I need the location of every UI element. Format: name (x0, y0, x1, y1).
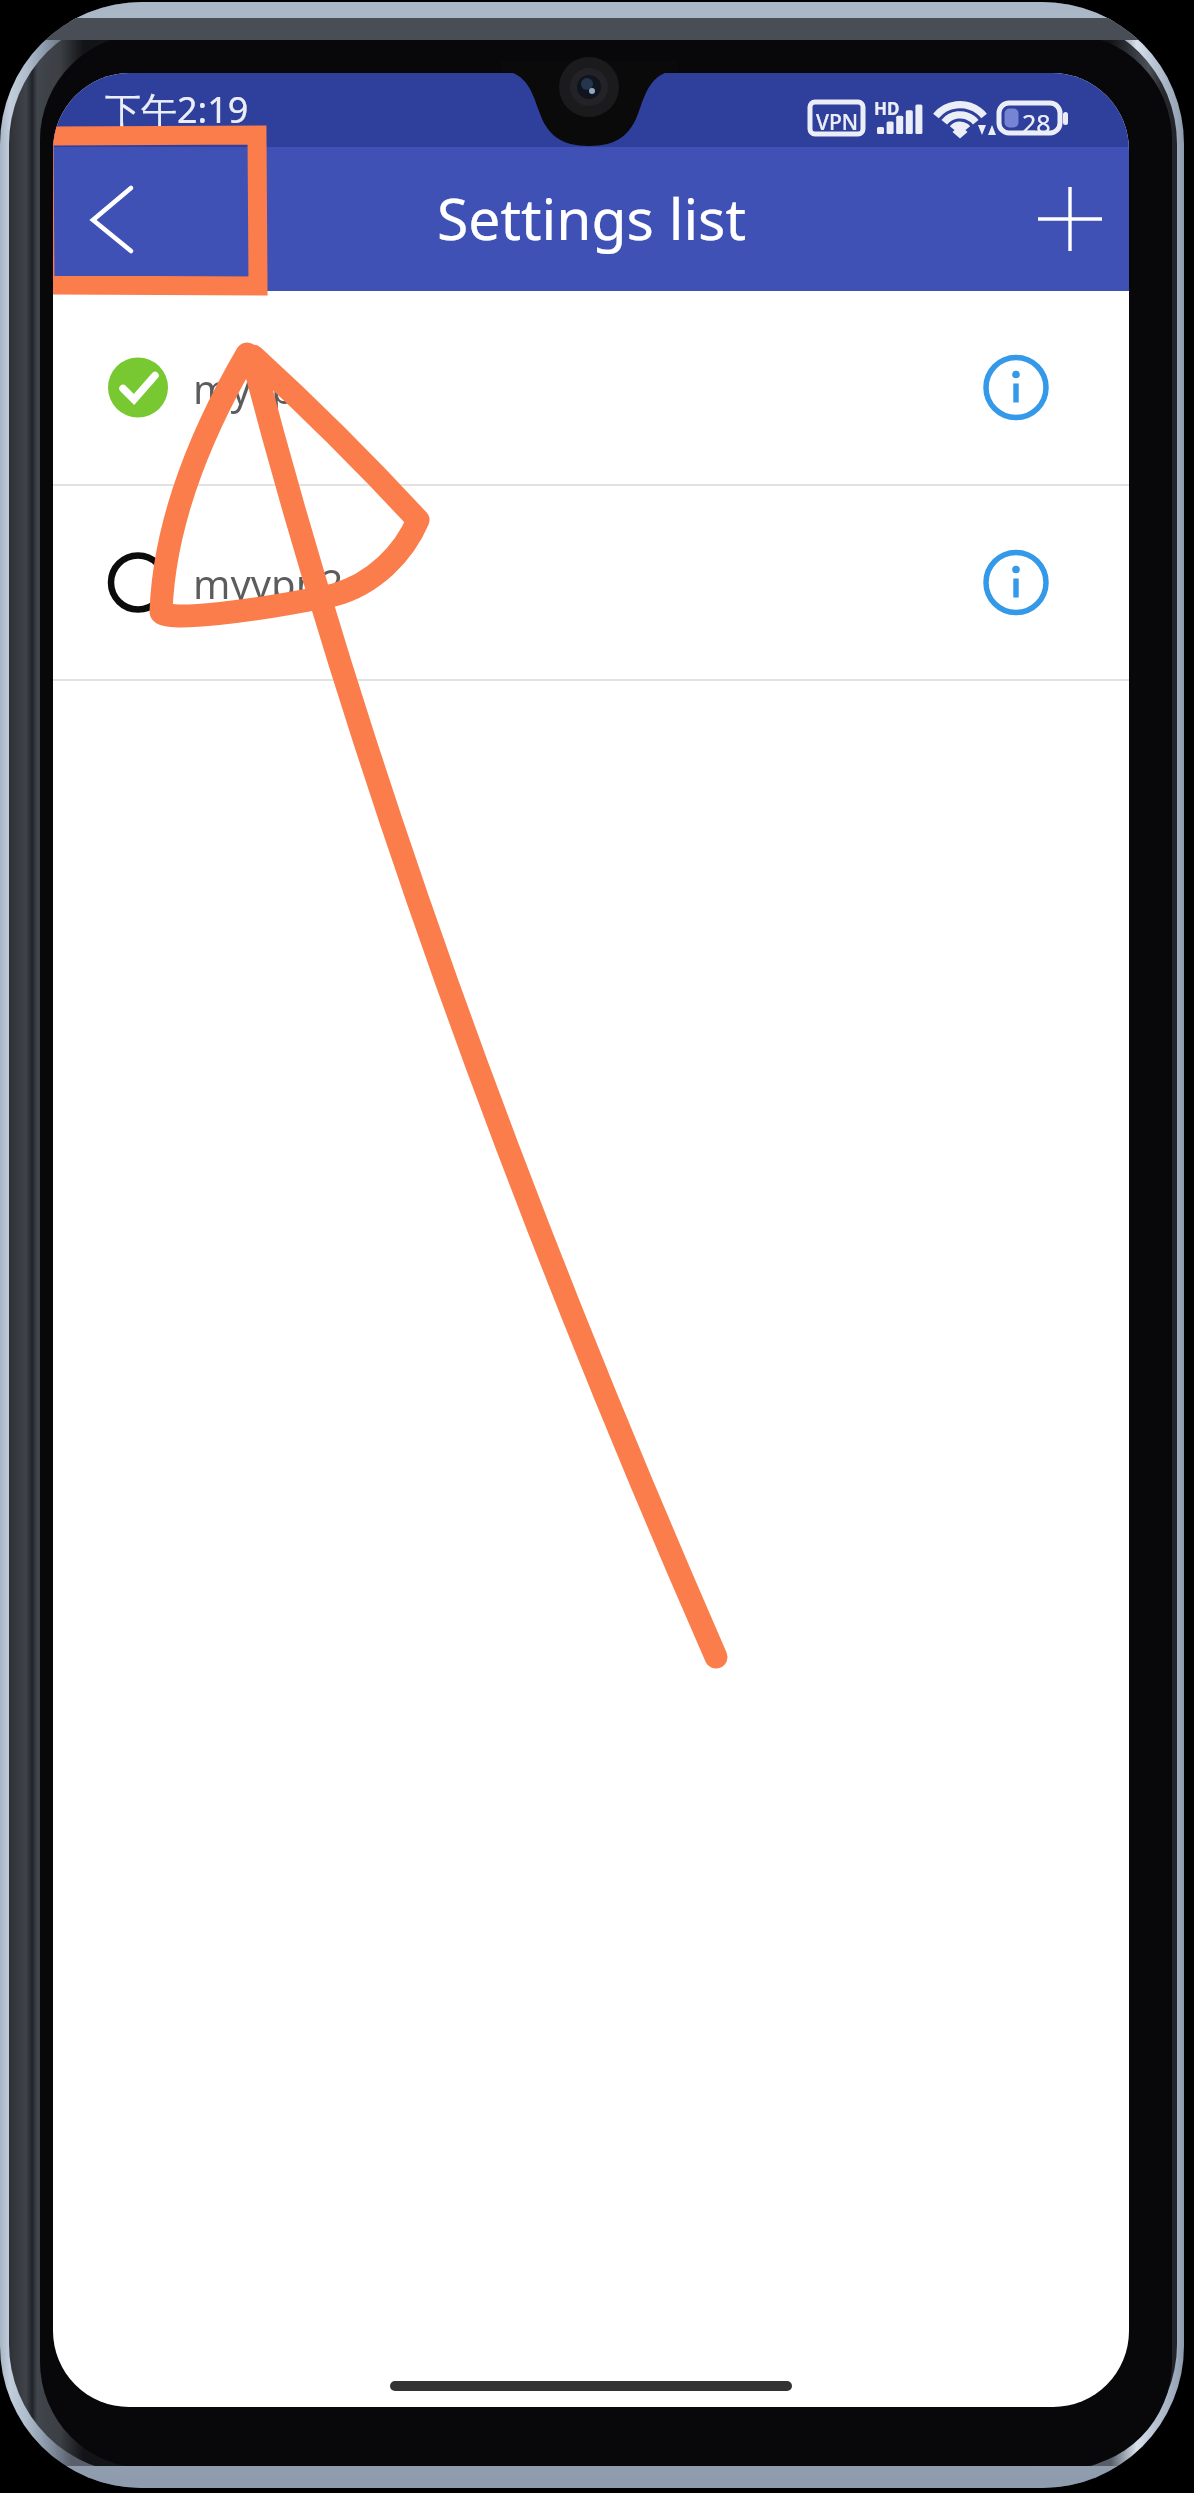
button[interactable]: myvpn2 (53, 486, 1129, 679)
staticText: VPN (816, 108, 859, 137)
button[interactable]: myvp (53, 291, 1129, 484)
staticText: myvpn2 (193, 556, 344, 610)
button[interactable]: Back (53, 147, 203, 291)
button[interactable]: Info (959, 486, 1129, 679)
staticText: 下午2:19 (105, 85, 249, 134)
staticText: 28 (1022, 106, 1051, 140)
staticText: HD (874, 97, 900, 120)
staticText: myvp (193, 361, 296, 415)
button[interactable]: Add (999, 147, 1129, 291)
button[interactable]: Info (959, 291, 1129, 484)
staticText: Settings list (437, 179, 746, 257)
